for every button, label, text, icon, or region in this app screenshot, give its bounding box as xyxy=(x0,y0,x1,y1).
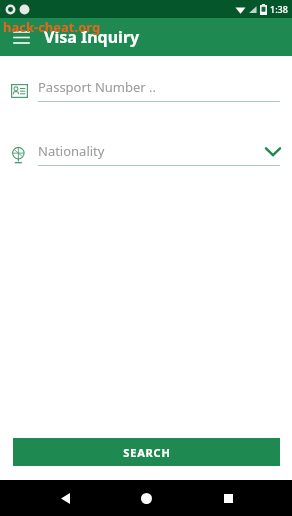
button[interactable]: Passport Number .. xyxy=(7,78,280,104)
staticText: Visa Inquiry xyxy=(44,26,140,48)
button[interactable]: Recent apps xyxy=(211,481,245,515)
button[interactable]: SEARCH xyxy=(13,438,280,466)
button[interactable]: Nationality xyxy=(7,142,280,168)
staticText: Nationality xyxy=(38,142,266,160)
staticText: 1:38 xyxy=(270,3,288,15)
button[interactable]: Home xyxy=(129,481,163,515)
button[interactable]: Open navigation menu xyxy=(6,22,36,52)
staticText: hack-cheat.org xyxy=(3,18,101,36)
staticText: Passport Number .. xyxy=(38,78,157,96)
button[interactable]: Back xyxy=(48,481,82,515)
staticText: SEARCH xyxy=(123,445,171,460)
